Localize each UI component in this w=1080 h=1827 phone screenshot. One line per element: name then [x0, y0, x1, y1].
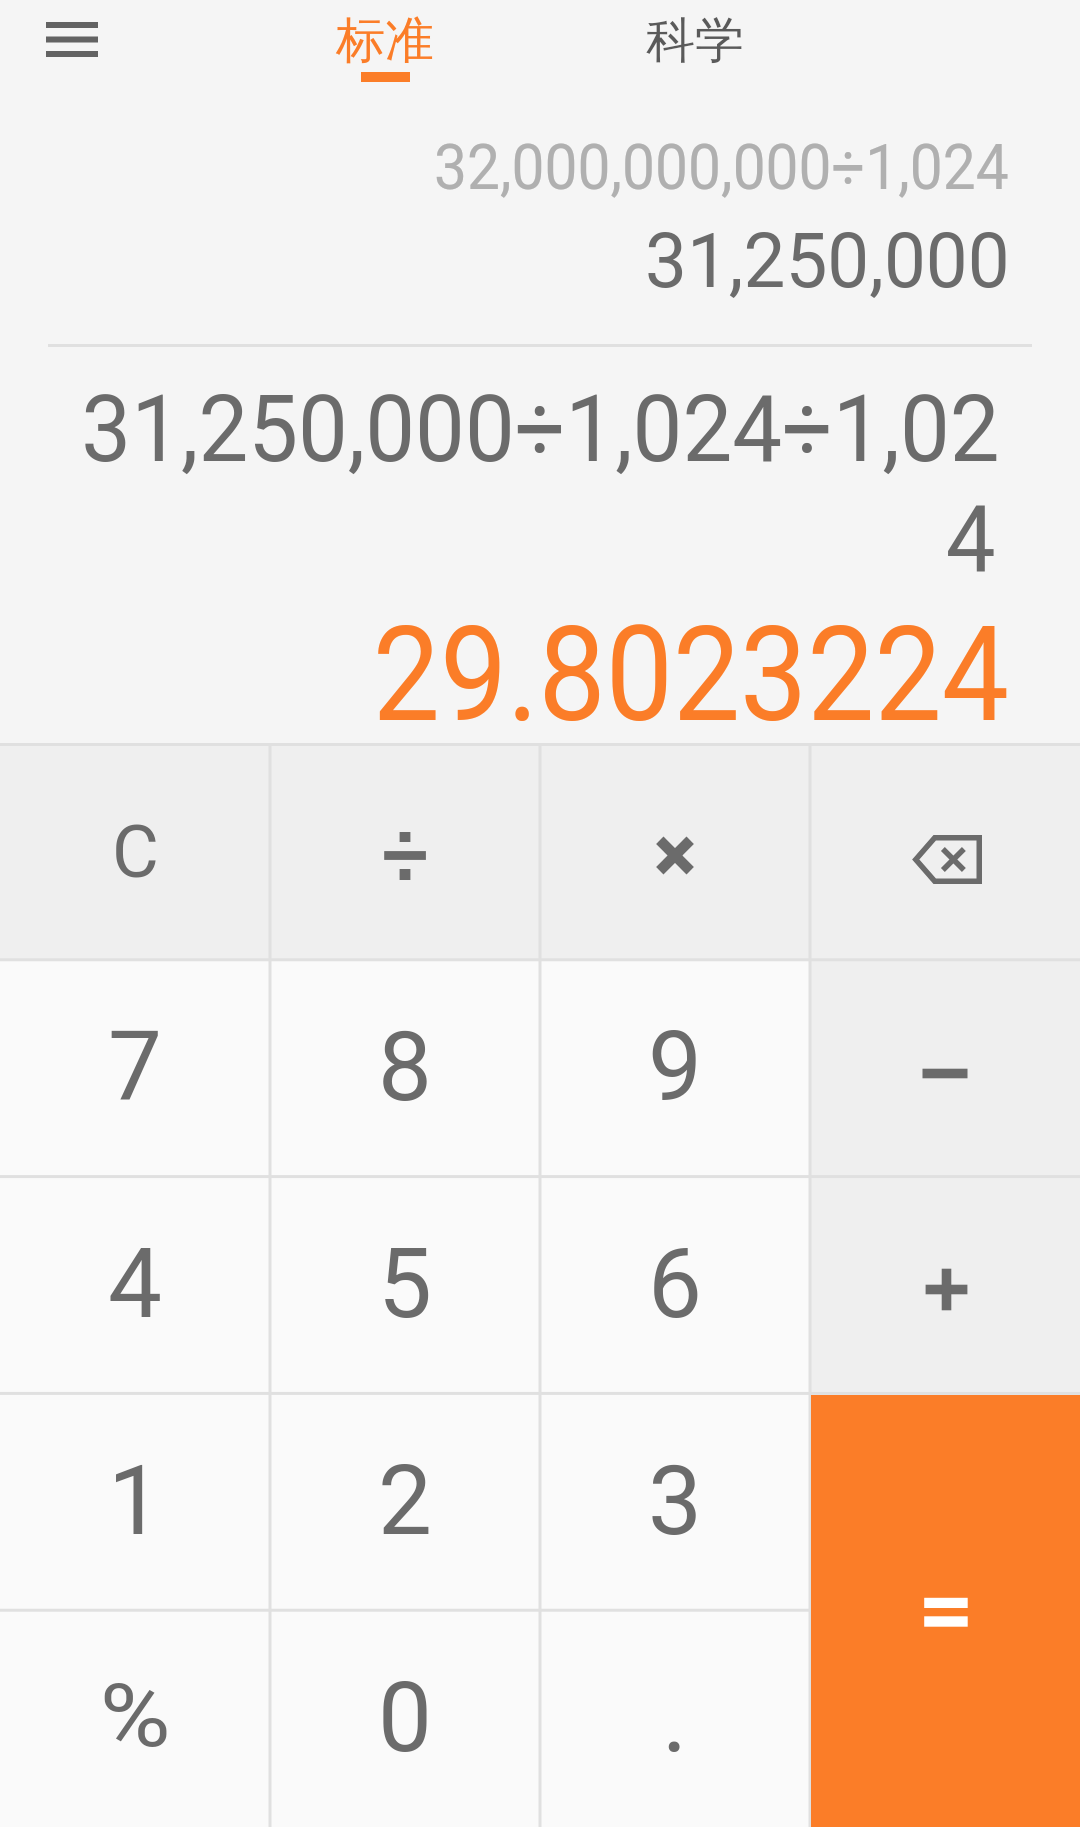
staticText: 3: [648, 1445, 702, 1558]
button[interactable]: 7: [0, 959, 270, 1176]
staticText: 0: [378, 1662, 432, 1775]
staticText: 5: [378, 1228, 432, 1341]
staticText: 1: [108, 1445, 162, 1558]
staticText: 标准: [336, 10, 434, 72]
button[interactable]: Multiply: [540, 743, 810, 959]
button[interactable]: 3: [540, 1393, 810, 1610]
button[interactable]: %: [0, 1610, 270, 1827]
staticText: 4: [108, 1228, 162, 1341]
staticText: 4: [946, 484, 996, 593]
button[interactable]: 6: [540, 1176, 810, 1393]
staticText: 8: [378, 1011, 432, 1124]
button[interactable]: Menu: [12, 0, 132, 80]
button[interactable]: 9: [540, 959, 810, 1176]
staticText: C: [112, 810, 159, 894]
button[interactable]: 8: [270, 959, 540, 1176]
staticText: 32,000,000,000÷1,024: [434, 131, 1009, 205]
button[interactable]: 0: [270, 1610, 540, 1827]
button[interactable]: [811, 1395, 1080, 1827]
staticText: 7: [108, 1011, 162, 1124]
button[interactable]: Minus: [810, 959, 1080, 1176]
staticText: %: [100, 1664, 171, 1767]
button[interactable]: 科学: [595, 0, 795, 95]
button[interactable]: Divide: [270, 743, 540, 959]
staticText: 9: [648, 1011, 702, 1124]
staticText: 29.8023224: [373, 598, 1009, 752]
button[interactable]: 2: [270, 1393, 540, 1610]
staticText: 2: [378, 1445, 432, 1558]
button[interactable]: C: [0, 743, 270, 959]
button[interactable]: 1: [0, 1393, 270, 1610]
button[interactable]: Backspace: [810, 743, 1080, 959]
button[interactable]: 5: [270, 1176, 540, 1393]
button[interactable]: 标准: [285, 0, 485, 95]
button[interactable]: .: [540, 1610, 810, 1827]
button[interactable]: 4: [0, 1176, 270, 1393]
staticText: 6: [648, 1228, 702, 1341]
button[interactable]: Plus: [810, 1176, 1080, 1393]
staticText: 科学: [646, 10, 744, 72]
staticText: 31,250,000: [645, 217, 1010, 305]
staticText: .: [662, 1662, 688, 1775]
staticText: 31,250,000÷1,024÷1,02: [81, 374, 1000, 483]
